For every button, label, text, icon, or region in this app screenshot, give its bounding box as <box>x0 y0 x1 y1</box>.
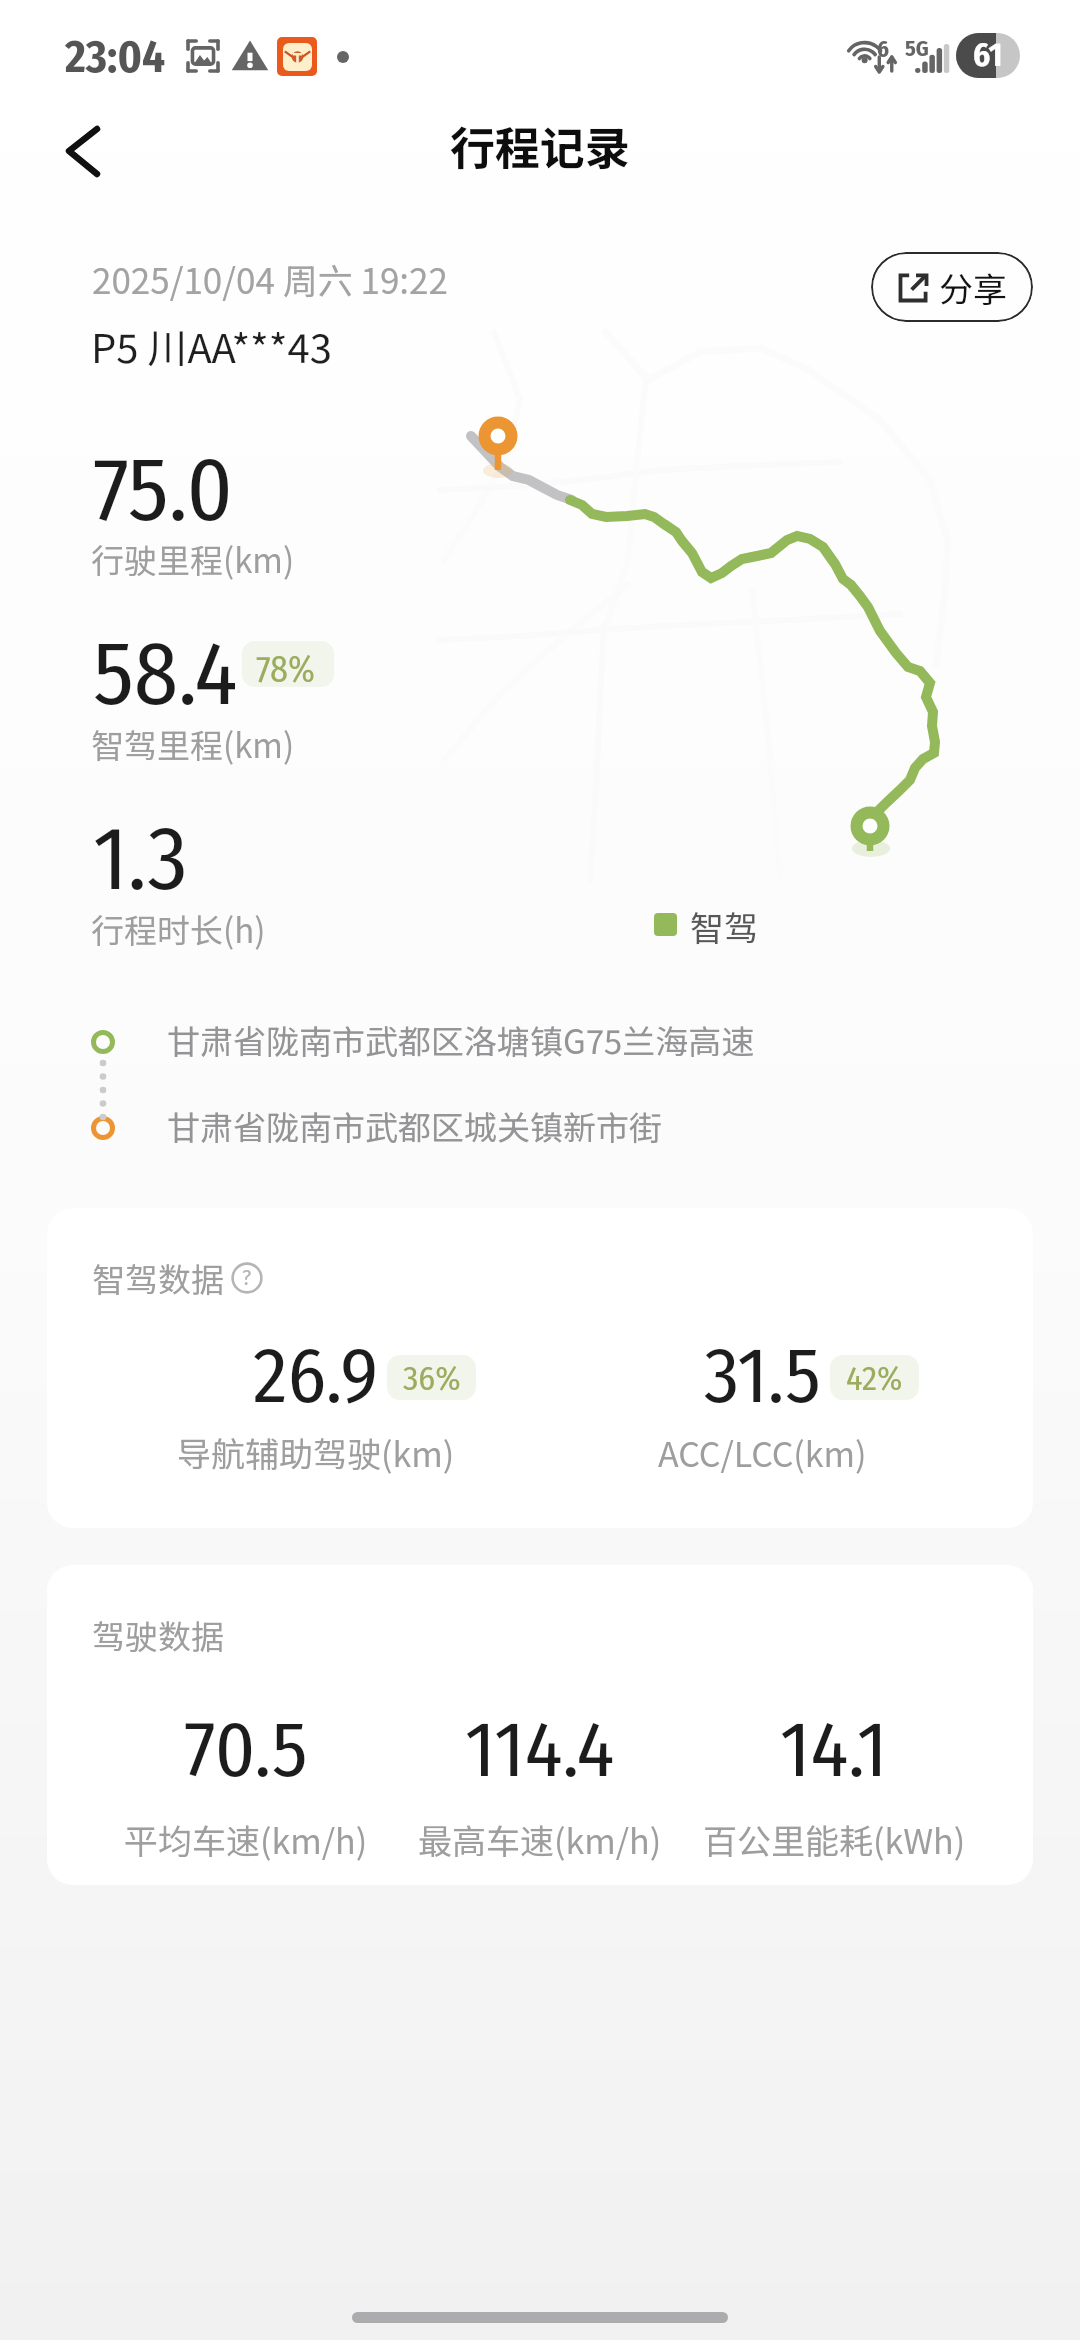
staticText: 导航辅助驾驶(km) <box>177 1428 455 1477</box>
staticText: 78% <box>256 648 315 687</box>
staticText: ? <box>242 1264 252 1290</box>
staticText: ACC/LCC(km) <box>658 1428 867 1477</box>
staticText: 14.1 <box>780 1703 888 1797</box>
staticText: 61 <box>973 35 1003 75</box>
button[interactable]: Trip start and end addresses <box>80 1010 780 1158</box>
staticText: 6 <box>877 35 890 63</box>
staticText: 114.4 <box>465 1703 615 1797</box>
staticText: P5 川AA***43 <box>91 317 332 375</box>
staticText: 分享 <box>939 263 1007 312</box>
staticText: 驾驶数据 <box>92 1611 224 1659</box>
staticText: 1.3 <box>93 806 188 913</box>
staticText: 23:04 <box>65 30 166 84</box>
staticText: 5G <box>905 35 929 61</box>
staticText: 行驶里程(km) <box>91 535 295 583</box>
staticText: 58.4 <box>93 621 238 728</box>
staticText: 行程时长(h) <box>91 905 266 953</box>
button[interactable]: About smart driving data <box>231 1262 263 1294</box>
button[interactable]: 分享 <box>871 252 1033 322</box>
staticText: 行程记录 <box>450 113 631 178</box>
button[interactable]: Back <box>34 106 128 196</box>
staticText: 最高车速(km/h) <box>418 1815 662 1864</box>
staticText: 36% <box>403 1358 461 1399</box>
staticText: 平均车速(km/h) <box>124 1815 368 1864</box>
button[interactable]: 驾驶数据 <box>47 1565 1033 1885</box>
staticText: 31.5 <box>704 1329 821 1423</box>
staticText: 75.0 <box>93 437 233 544</box>
staticText: 百公里能耗(kWh) <box>703 1815 966 1864</box>
staticText: 42% <box>846 1358 903 1399</box>
staticText: 2025/10/04 周六 19:22 <box>92 253 448 304</box>
staticText: 智驾里程(km) <box>91 720 295 768</box>
staticText: 26.9 <box>253 1329 379 1423</box>
staticText: 甘肃省陇南市武都区洛塘镇G75兰海高速 <box>167 1016 755 1064</box>
staticText: 甘肃省陇南市武都区城关镇新市街 <box>167 1102 662 1150</box>
staticText: 智驾数据 <box>92 1254 224 1302</box>
button[interactable]: 智驾数据 <box>47 1208 1033 1528</box>
staticText: 70.5 <box>184 1703 308 1797</box>
staticText: 智驾 <box>690 902 758 951</box>
